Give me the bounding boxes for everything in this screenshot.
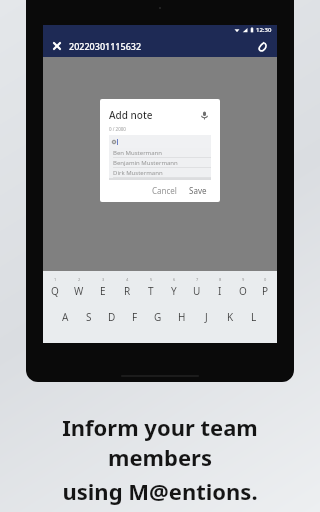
staticText: 7 [196, 277, 199, 282]
staticText: K [227, 310, 234, 324]
staticText: 5 [150, 277, 153, 282]
staticText: 2 [78, 277, 81, 282]
staticText: D [108, 310, 116, 324]
staticText: Inform your team members [10, 412, 310, 472]
button[interactable]: 3 [91, 276, 115, 298]
button[interactable]: Ben Mustermann [109, 148, 211, 158]
staticText: 0 / 2000 [109, 126, 126, 132]
button[interactable]: Cancel [148, 183, 181, 198]
staticText: P [262, 284, 269, 298]
staticText: T [148, 284, 154, 298]
button[interactable]: 5 [139, 276, 162, 298]
staticText: E [100, 284, 106, 298]
staticText: Ben Mustermann [113, 149, 162, 157]
button[interactable]: J [194, 307, 218, 327]
button[interactable]: 7 [185, 276, 208, 298]
staticText: H [178, 310, 186, 324]
button[interactable]: D [100, 307, 123, 327]
button[interactable] [109, 135, 211, 148]
staticText: 3 [102, 277, 105, 282]
staticText: F [132, 310, 138, 324]
staticText: Save [189, 185, 207, 196]
staticText: 0 [264, 277, 267, 282]
staticText: Q [51, 284, 59, 298]
button[interactable]: 9 [231, 276, 254, 298]
staticText: 9 [242, 277, 245, 282]
button[interactable]: 1 [43, 276, 67, 298]
staticText: W [74, 284, 84, 298]
staticText: J [205, 310, 208, 324]
staticText: Dirk Mustermann [113, 169, 163, 177]
staticText: O [239, 284, 247, 298]
button[interactable]: A [54, 307, 77, 327]
staticText: 1 [54, 277, 57, 282]
staticText: using M@entions. [62, 476, 258, 506]
staticText: 6 [173, 277, 176, 282]
button[interactable]: Save [185, 183, 211, 198]
staticText: 4 [126, 277, 129, 282]
staticText: S [86, 310, 92, 324]
staticText: Benjamin Mustermann [113, 159, 178, 167]
staticText: I [218, 284, 222, 298]
staticText: Add note [109, 108, 153, 122]
staticText: G [154, 310, 162, 324]
staticText: R [124, 284, 131, 298]
button[interactable]: Benjamin Mustermann [109, 158, 211, 168]
staticText: L [251, 310, 257, 324]
button[interactable]: Close [50, 39, 64, 53]
button[interactable]: L [242, 307, 266, 327]
staticText: 12:30 [256, 26, 272, 34]
button[interactable]: H [170, 307, 194, 327]
staticText: 20220301115632 [69, 40, 142, 52]
button[interactable]: 4 [115, 276, 139, 298]
button[interactable]: Voice input [198, 109, 211, 122]
button[interactable]: Attach file [254, 38, 270, 54]
staticText: Cancel [152, 185, 177, 196]
button[interactable]: 2 [67, 276, 91, 298]
button[interactable]: 6 [162, 276, 185, 298]
button[interactable]: G [146, 307, 170, 327]
staticText: U [193, 284, 201, 298]
staticText: Y [171, 284, 177, 298]
button[interactable]: Dirk Mustermann [109, 168, 211, 178]
button[interactable]: 0 [254, 276, 277, 298]
button[interactable]: 8 [208, 276, 231, 298]
button[interactable]: K [218, 307, 242, 327]
staticText: 8 [219, 277, 222, 282]
button[interactable]: S [77, 307, 100, 327]
button[interactable]: F [123, 307, 146, 327]
staticText: A [62, 310, 69, 324]
